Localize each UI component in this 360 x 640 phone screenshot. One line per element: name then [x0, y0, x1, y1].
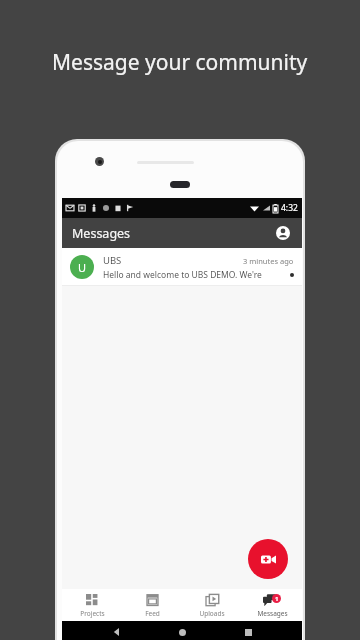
staticText: U	[78, 260, 87, 275]
staticText: 1	[275, 595, 279, 603]
button[interactable]: Feed	[122, 589, 182, 621]
staticText: Messages	[72, 225, 131, 242]
button[interactable]: 1	[242, 589, 302, 621]
button[interactable]: New video message	[248, 539, 288, 579]
staticText: Uploads	[199, 609, 225, 618]
staticText: UBS	[103, 254, 243, 267]
staticText: Hello and welcome to UBS DEMO. We're loo…	[103, 269, 286, 281]
button[interactable]: Uploads	[182, 589, 242, 621]
button[interactable]: Projects	[62, 589, 122, 621]
button[interactable]: Back	[106, 621, 128, 640]
staticText: Feed	[145, 609, 160, 618]
button[interactable]: U	[62, 248, 302, 286]
button[interactable]: Account	[272, 222, 294, 244]
staticText: Projects	[80, 609, 105, 618]
button[interactable]: Home	[171, 621, 193, 640]
staticText: 3 minutes ago	[243, 256, 294, 266]
staticText: Messages	[257, 609, 288, 618]
button[interactable]: Recents	[237, 621, 259, 640]
staticText: 4:32	[281, 202, 298, 214]
staticText: Message your community	[52, 48, 308, 77]
